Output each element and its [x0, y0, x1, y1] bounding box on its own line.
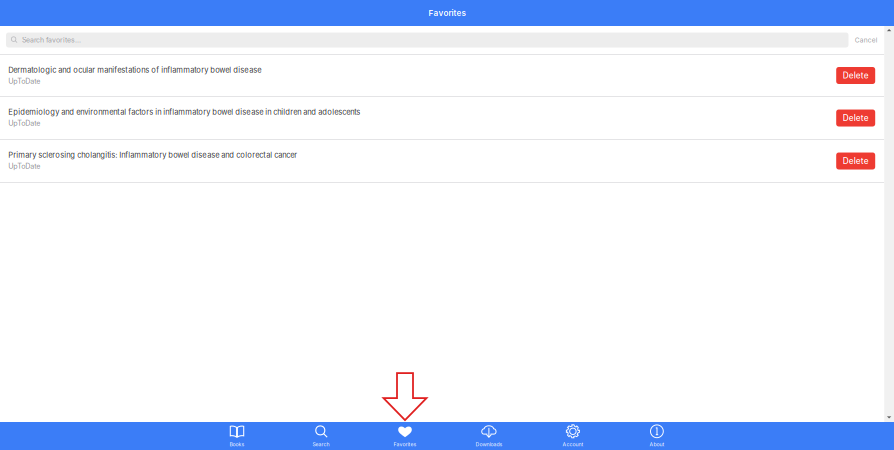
staticText: Delete — [843, 113, 869, 123]
button[interactable]: Delete — [836, 109, 875, 126]
button[interactable]: Cancel — [848, 32, 884, 47]
staticText: UpToDate — [8, 119, 40, 127]
staticText: About — [649, 441, 664, 448]
staticText: Dermatologic and ocular manifestations o… — [8, 65, 261, 75]
button[interactable]: Account — [531, 422, 615, 450]
staticText: UpToDate — [8, 77, 40, 85]
staticText: Downloads — [475, 441, 502, 448]
staticText: Cancel — [855, 36, 878, 44]
staticText: Primary sclerosing cholangitis: Inflamma… — [8, 150, 297, 160]
button[interactable]: Books — [195, 422, 279, 450]
staticText: Delete — [843, 156, 869, 166]
staticText: Epidemiology and environmental factors i… — [8, 107, 360, 117]
button[interactable]: Delete — [836, 152, 875, 169]
staticText: Account — [562, 441, 583, 448]
button[interactable]: Epidemiology and environmental factors i… — [0, 97, 836, 139]
button[interactable]: Favorites — [363, 422, 447, 450]
button[interactable]: Search — [279, 422, 363, 450]
staticText: Search — [312, 441, 329, 448]
staticText: Favorites — [393, 441, 416, 448]
staticText: Delete — [843, 70, 869, 80]
button[interactable]: About — [615, 422, 699, 450]
staticText: Books — [229, 441, 244, 448]
staticText: Search favorites... — [22, 36, 81, 44]
staticText: Favorites — [428, 8, 465, 18]
button[interactable]: Primary sclerosing cholangitis: Inflamma… — [0, 140, 836, 182]
button[interactable]: Downloads — [447, 422, 531, 450]
button[interactable]: Dermatologic and ocular manifestations o… — [0, 55, 836, 96]
button[interactable]: Delete — [836, 67, 875, 84]
staticText: UpToDate — [8, 162, 40, 170]
